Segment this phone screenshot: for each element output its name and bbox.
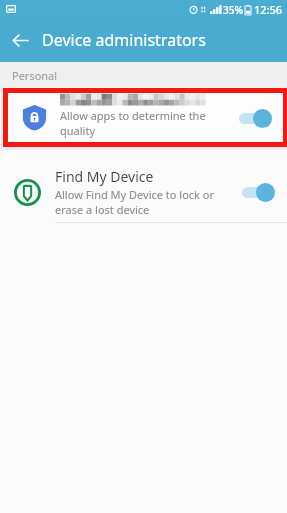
button[interactable]: Toggle on	[240, 180, 280, 204]
staticText: erase a lost device	[55, 202, 150, 217]
button[interactable]: Find My Device	[0, 162, 287, 222]
staticText: Device administrators	[42, 29, 206, 51]
staticText: Find My Device	[55, 167, 154, 186]
button[interactable]: Allow apps to determine the quality	[8, 93, 283, 142]
staticText: 35%	[223, 3, 243, 17]
staticText: 12:56	[254, 2, 283, 17]
staticText: Allow Find My Device to lock or	[55, 187, 215, 202]
staticText: Allow apps to determine the quality	[60, 108, 227, 138]
button[interactable]: Toggle on	[237, 106, 277, 130]
staticText: Personal	[12, 68, 58, 83]
button[interactable]: Back	[0, 20, 40, 60]
